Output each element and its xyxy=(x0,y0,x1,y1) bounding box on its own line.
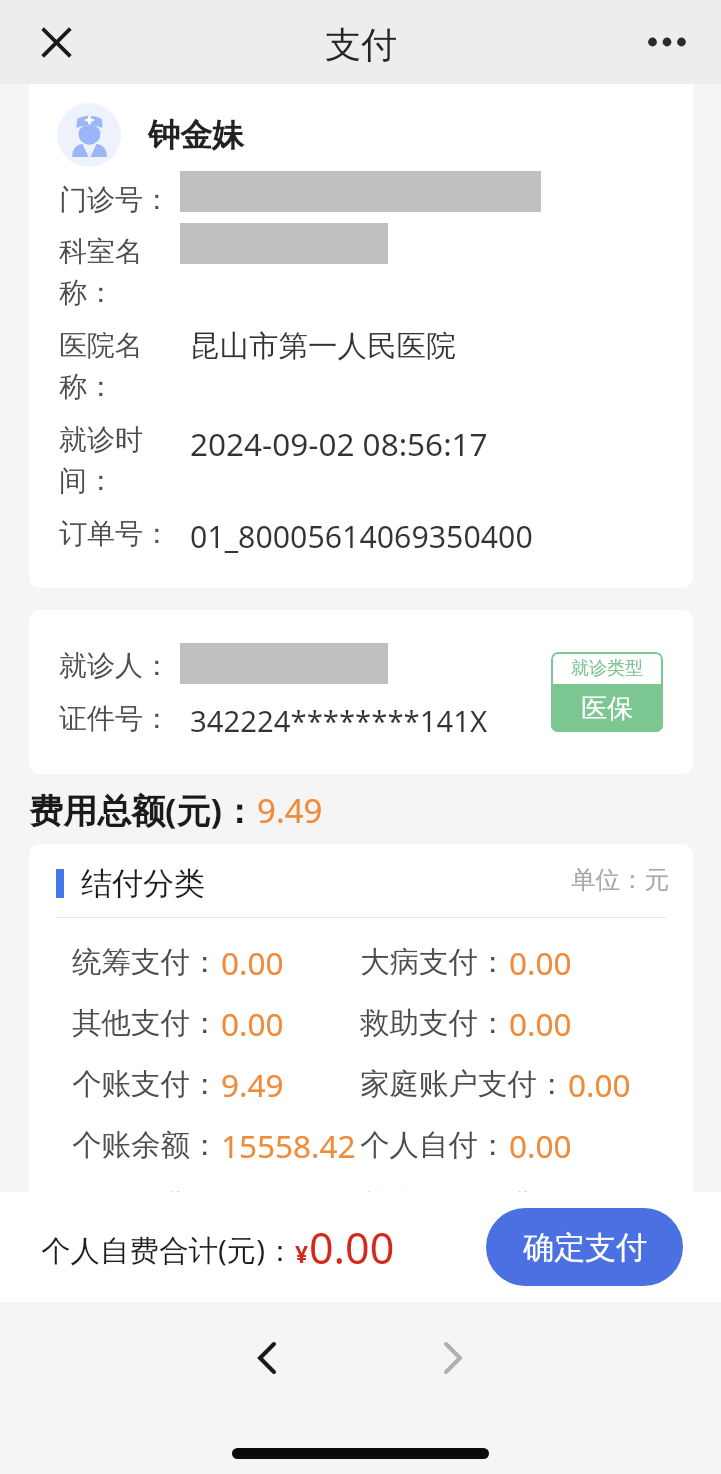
staticText: 0.00 xyxy=(509,1124,572,1167)
staticText: 0.00 xyxy=(568,1063,631,1106)
staticText: 个人自费合计(元)： xyxy=(41,1229,295,1269)
staticText: 门诊号： xyxy=(59,182,171,217)
staticText: 确定支付 xyxy=(523,1228,647,1267)
button[interactable]: 更多 xyxy=(639,14,695,70)
staticText: 费用总额(元)： xyxy=(29,787,257,833)
staticText: 0.00 xyxy=(509,1002,572,1045)
staticText: 支付 xyxy=(325,22,397,67)
staticText: 结付分类 xyxy=(81,864,205,903)
staticText: 其他支付： xyxy=(72,1005,220,1042)
staticText: 医院名称： xyxy=(59,328,179,404)
staticText: 01_80005614069350400 xyxy=(190,516,533,557)
staticText: 0.00 xyxy=(509,941,572,984)
staticText: 家庭账户支付： xyxy=(360,1066,567,1103)
staticText: 救助支付： xyxy=(360,1005,508,1042)
staticText: 大病支付： xyxy=(360,944,508,981)
staticText: 0.00 xyxy=(568,1185,631,1228)
staticText: 统筹支付： xyxy=(72,944,220,981)
staticText: 个账余额： xyxy=(72,1127,220,1164)
staticText: 证件号： xyxy=(59,701,171,736)
staticText: 订单号： xyxy=(59,516,171,551)
staticText: 钟金妹 xyxy=(148,115,244,155)
button[interactable]: 关闭 xyxy=(28,14,84,70)
staticText: 基本金报负费： xyxy=(360,1188,567,1225)
staticText: 科室名称： xyxy=(59,234,179,310)
staticText: 0.00 xyxy=(309,1218,395,1277)
staticText: 就诊人： xyxy=(59,648,171,683)
button[interactable]: 确定支付 xyxy=(486,1208,683,1286)
staticText: 就诊时间： xyxy=(59,422,179,498)
button[interactable]: 返回 xyxy=(232,1323,302,1393)
staticText: 0.00 xyxy=(221,941,284,984)
staticText: ¥ xyxy=(295,1238,309,1269)
staticText: 342224********141X xyxy=(190,701,488,741)
staticText: 9.49 xyxy=(257,788,323,833)
staticText: 15558.42 xyxy=(221,1124,356,1167)
staticText: 个账支付： xyxy=(72,1066,220,1103)
staticText: 就诊类型 xyxy=(571,657,643,680)
staticText: 昆山市第一人民医院 xyxy=(190,328,456,365)
button[interactable]: 前进 xyxy=(418,1323,488,1393)
staticText: 0.00 xyxy=(221,1002,284,1045)
staticText: 9.49 xyxy=(221,1063,284,1106)
staticText: 单位：元 xyxy=(571,864,669,895)
staticText: 2024-09-02 08:56:17 xyxy=(190,422,488,465)
staticText: 个人自付： xyxy=(360,1127,508,1164)
staticText: 医保 xyxy=(581,692,633,725)
